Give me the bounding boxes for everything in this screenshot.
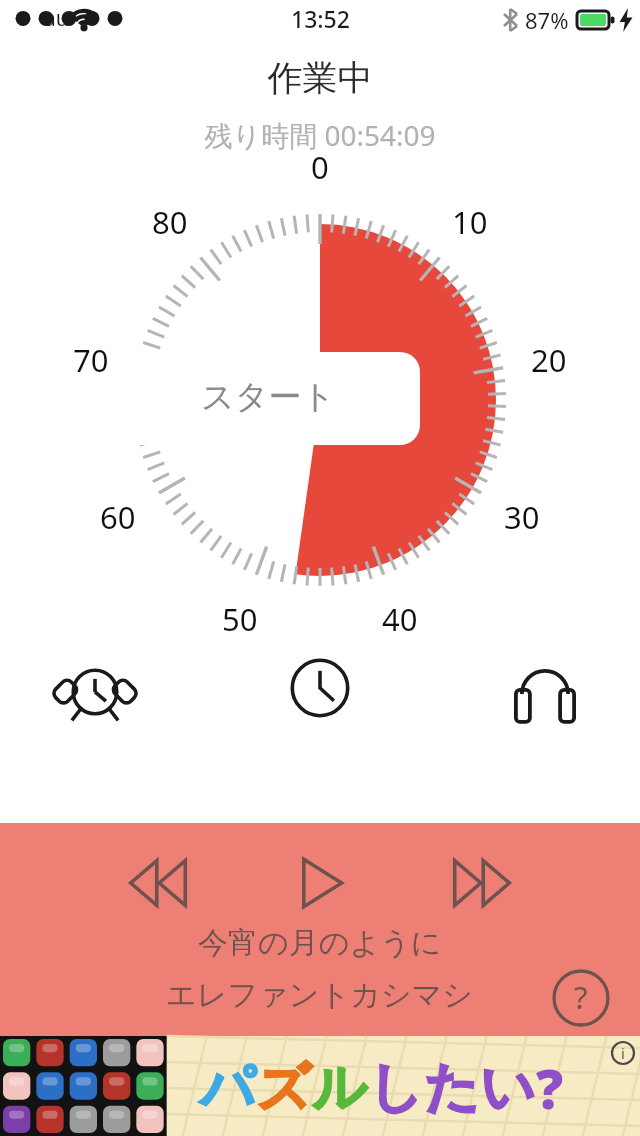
staticText: 作業中 [0,56,640,100]
staticText: 10 [452,201,488,243]
staticText: パ [200,1054,256,1122]
staticText: 20 [531,339,567,381]
staticText: 50 [222,598,258,640]
staticText: 今宵の月のように [198,924,442,962]
staticText: ? [574,976,588,1018]
button[interactable]: Timer [265,640,375,736]
staticText: i [621,1043,625,1063]
staticText: 13:52 [291,3,350,34]
staticText: 30 [504,496,540,538]
staticText: 0 [311,146,329,188]
staticText: い [480,1054,536,1122]
staticText: au [44,4,69,33]
staticText: た [424,1054,480,1122]
button[interactable]: Play [282,845,358,921]
button[interactable]: Alarm [40,640,150,736]
staticText: 87% [525,5,569,35]
staticText: スタート [201,376,336,418]
staticText: 70 [73,339,109,381]
button[interactable]: Help [552,969,610,1027]
staticText: 残り時間 00:54:09 [0,116,640,154]
staticText: 80 [152,201,188,243]
staticText: エレファントカシマシ [166,976,474,1014]
button[interactable]: Ad information [611,1041,635,1065]
button[interactable]: Next track [444,845,520,921]
button[interactable]: Previous track [120,845,196,921]
staticText: し [368,1054,424,1122]
staticText: 60 [100,496,136,538]
button[interactable]: Headphones [490,640,600,736]
staticText: ズ [256,1054,312,1122]
staticText: ル [312,1054,368,1122]
button[interactable]: スタート [201,376,336,418]
staticText: ? [536,1051,564,1125]
staticText: 40 [382,598,418,640]
